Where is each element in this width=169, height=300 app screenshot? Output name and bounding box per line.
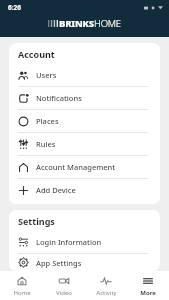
button[interactable]: Login Information xyxy=(9,231,160,253)
staticText: BRINKS xyxy=(59,17,94,30)
button[interactable]: Home xyxy=(0,271,43,300)
staticText: 6:26 xyxy=(8,3,21,12)
button[interactable]: Places xyxy=(9,110,160,132)
button[interactable]: Add Device xyxy=(9,179,160,201)
staticText: Places xyxy=(36,116,59,126)
button[interactable]: Activity xyxy=(85,271,127,300)
staticText: Home xyxy=(13,289,31,297)
staticText: App Settings xyxy=(36,258,82,268)
button[interactable]: App Settings xyxy=(9,254,160,271)
staticText: Login Information xyxy=(36,237,102,247)
staticText: More xyxy=(140,289,156,297)
staticText: Notifications xyxy=(36,93,82,103)
staticText: Users xyxy=(36,70,57,80)
staticText: Add Device xyxy=(36,185,76,195)
staticText: Activity xyxy=(96,289,117,297)
button[interactable]: Account Management xyxy=(9,156,160,178)
button[interactable]: Users xyxy=(9,64,160,86)
staticText: Account Management xyxy=(36,162,116,172)
button[interactable]: Rules xyxy=(9,133,160,155)
staticText: Settings xyxy=(18,215,55,227)
button[interactable]: More xyxy=(127,271,169,300)
staticText: Rules xyxy=(36,139,56,149)
button[interactable]: Notifications xyxy=(9,87,160,109)
staticText: Video xyxy=(56,289,72,297)
staticText: Account xyxy=(18,48,55,60)
button[interactable]: Video xyxy=(43,271,85,300)
staticText: HOME xyxy=(94,17,121,30)
